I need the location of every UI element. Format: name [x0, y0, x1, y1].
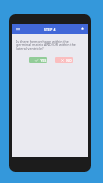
staticText: Is there hemorrhage within the	[16, 39, 69, 44]
button[interactable]: Home	[80, 25, 87, 32]
button[interactable]: Menu	[13, 25, 20, 32]
button[interactable]: NO	[55, 57, 73, 63]
staticText: germinal matrix AND/OR within the	[16, 42, 76, 47]
staticText: lateral ventricle?	[16, 46, 44, 51]
staticText: YES	[40, 58, 47, 62]
button[interactable]: YES	[29, 57, 47, 63]
staticText: NO	[66, 58, 72, 62]
staticText: STEP 4	[44, 27, 56, 31]
